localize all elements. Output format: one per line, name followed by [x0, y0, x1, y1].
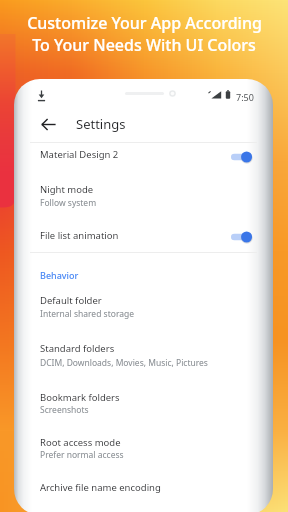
button[interactable] [24, 333, 263, 377]
staticText: Night mode [40, 183, 94, 196]
staticText: Prefer normal access [40, 449, 124, 461]
staticText: Follow system [40, 197, 97, 209]
staticText: Settings [76, 115, 126, 133]
staticText: 7:50 [236, 91, 254, 103]
button[interactable]: Behavior [40, 266, 79, 281]
staticText: Bookmark folders [40, 391, 120, 404]
staticText: Archive file name encoding [40, 481, 161, 494]
button[interactable] [24, 285, 263, 329]
staticText: Standard folders [40, 342, 115, 355]
staticText: Internal shared storage [40, 308, 135, 320]
staticText: Material Design 2 [40, 148, 119, 161]
button[interactable] [24, 142, 263, 170]
staticText: To Your Needs With UI Colors [32, 34, 256, 56]
staticText: Root access mode [40, 436, 121, 449]
button[interactable] [24, 473, 263, 501]
button[interactable] [24, 428, 263, 472]
staticText: Screenshots [40, 404, 89, 416]
button[interactable] [24, 174, 263, 218]
button[interactable] [24, 221, 263, 249]
staticText: Behavior [40, 269, 79, 281]
staticText: Customize Your App According [27, 12, 262, 34]
button[interactable]: Back [34, 110, 62, 138]
staticText: Default folder [40, 294, 102, 307]
staticText: DCIM, Downloads, Movies, Music, Pictures [40, 357, 208, 369]
staticText: File list animation [40, 229, 119, 242]
button[interactable] [24, 382, 263, 426]
